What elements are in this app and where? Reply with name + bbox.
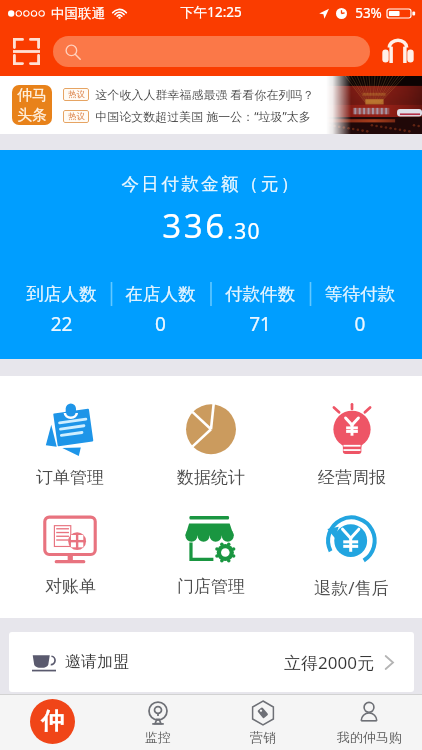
staticText: 经营周报	[318, 467, 386, 488]
button[interactable]: 门店管理	[140, 512, 281, 597]
button[interactable]: 数据统计	[140, 403, 281, 488]
staticText: 中国论文数超过美国 施一公：“垃圾”太多	[95, 108, 311, 124]
staticText: 0	[111, 311, 210, 337]
staticText: 监控	[145, 729, 171, 745]
button[interactable]: 热议	[63, 108, 311, 124]
staticText: 中国联通	[51, 5, 105, 22]
button[interactable]: Customer service	[378, 31, 418, 71]
staticText: 退款/售后	[314, 576, 389, 599]
staticText: 营销	[250, 729, 276, 745]
button[interactable]: 首页	[0, 695, 105, 750]
staticText: 在店人数	[111, 283, 210, 305]
staticText: 付款件数	[210, 283, 310, 305]
button[interactable]: 对账单	[0, 512, 140, 597]
staticText: 订单管理	[36, 467, 104, 488]
button[interactable]: 营销	[210, 695, 316, 750]
staticText: 数据统计	[177, 467, 245, 488]
staticText: 对账单	[45, 576, 96, 597]
button[interactable]: Scan QR code	[6, 31, 46, 71]
staticText: 53%	[355, 4, 382, 22]
staticText: 今日付款金额（元）	[121, 173, 301, 195]
staticText: 这个收入人群幸福感最强 看看你在列吗？	[95, 86, 315, 102]
button[interactable]: 退款/售后	[281, 512, 422, 599]
staticText: .30	[227, 217, 261, 246]
staticText: 热议	[68, 89, 85, 100]
staticText: 门店管理	[177, 576, 245, 597]
button[interactable]: 我的仲马购	[316, 695, 422, 750]
staticText: 头条	[17, 106, 47, 125]
button[interactable]: 经营周报	[281, 403, 422, 488]
staticText: 71	[210, 311, 310, 337]
staticText: 立得2000元	[284, 651, 374, 674]
button[interactable]: 热议	[63, 86, 315, 102]
staticText: 仲马	[17, 86, 47, 105]
button[interactable]: 订单管理	[0, 403, 140, 488]
staticText: 到店人数	[12, 283, 111, 305]
button[interactable]: News photo	[326, 76, 422, 134]
staticText: 下午12:25	[180, 3, 242, 21]
button[interactable]: 监控	[105, 695, 210, 750]
button[interactable]: 仲马	[12, 85, 52, 125]
staticText: 22	[12, 311, 111, 337]
staticText: 热议	[68, 111, 85, 122]
staticText: 0	[310, 311, 410, 337]
staticText: 邀请加盟	[65, 652, 129, 672]
staticText: 仲	[41, 707, 64, 736]
button[interactable]: 邀请加盟	[9, 632, 414, 692]
staticText: 我的仲马购	[337, 729, 402, 745]
staticText: 等待付款	[310, 283, 410, 305]
button[interactable]: Search	[53, 36, 370, 67]
staticText: 336	[162, 203, 227, 248]
